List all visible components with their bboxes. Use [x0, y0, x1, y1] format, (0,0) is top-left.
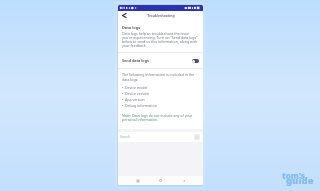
staticText: guide [286, 174, 314, 187]
staticText: tom's [282, 170, 305, 181]
staticText: Data logs help us troubleshoot the issue… [122, 31, 199, 49]
staticText: • [122, 103, 124, 108]
staticText: Troubleshooting [147, 13, 175, 18]
button[interactable]: Back [180, 177, 187, 184]
button[interactable]: Back [119, 11, 128, 20]
button[interactable]: Recent apps [134, 177, 141, 184]
staticText: • [122, 97, 124, 102]
staticText: The following information is included in… [122, 72, 199, 82]
staticText: • [122, 85, 124, 90]
staticText: Search [120, 135, 130, 139]
staticText: Note: Data logs do not include any of yo… [122, 113, 199, 122]
staticText: App version [125, 97, 145, 102]
button[interactable]: Send data logs toggle [192, 59, 199, 63]
staticText: Debug information [125, 103, 157, 108]
staticText: Device version [125, 91, 150, 96]
staticText: Data logs [122, 25, 141, 30]
staticText: Send data logs [122, 58, 192, 63]
button[interactable]: Search [118, 132, 203, 142]
staticText: Device model [125, 85, 148, 90]
button[interactable]: Send data logs [118, 53, 203, 68]
button[interactable]: Home [157, 177, 164, 184]
staticText: • [122, 91, 124, 96]
